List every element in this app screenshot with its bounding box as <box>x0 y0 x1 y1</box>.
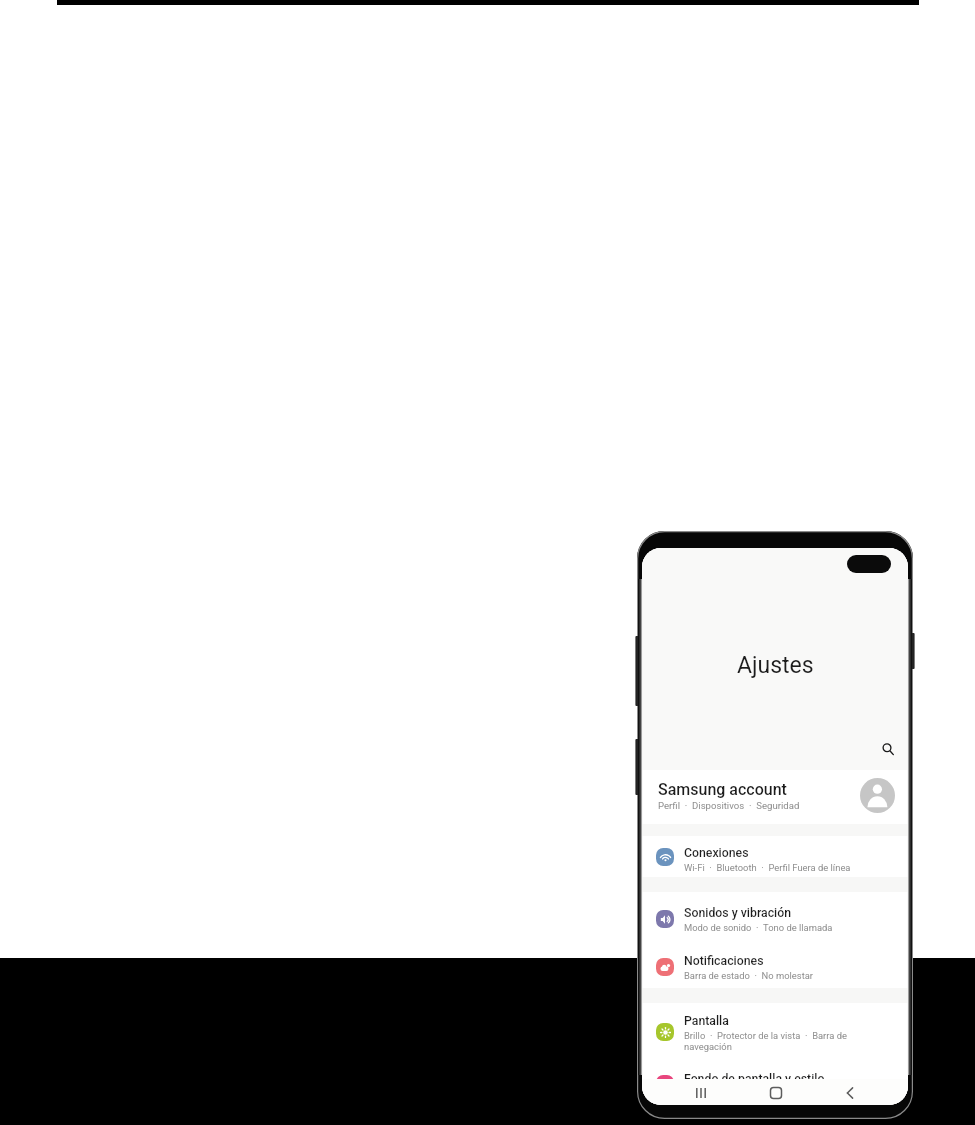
staticText: Samsung account <box>658 780 787 799</box>
staticText: Notificaciones <box>684 954 764 968</box>
button[interactable]: Sonidos y vibración <box>642 892 908 943</box>
button[interactable]: Notificaciones <box>642 943 908 988</box>
staticText: Barra de estado · No molestar <box>684 970 884 981</box>
staticText: Conexiones <box>684 846 749 860</box>
staticText: Brillo · Protector de la vista · Barra d… <box>684 1030 850 1052</box>
staticText: Pantalla <box>684 1014 729 1028</box>
button[interactable]: Inicio <box>765 1082 787 1104</box>
button[interactable]: Recientes <box>690 1082 712 1104</box>
staticText: Perfil · Dispositivos · Seguridad <box>658 800 800 811</box>
button[interactable]: Atrás <box>839 1082 861 1104</box>
button[interactable]: Pantalla <box>642 1003 908 1061</box>
staticText: Wi-Fi · Bluetooth · Perfil Fuera de líne… <box>684 862 884 873</box>
staticText: Fondo de pantalla y estilo <box>684 1072 825 1086</box>
staticText: Sonidos y vibración <box>684 906 792 920</box>
staticText: Ajustes <box>737 652 814 679</box>
button[interactable]: Buscar <box>875 736 900 761</box>
button[interactable]: Samsung account <box>642 770 908 824</box>
staticText: Modo de sonido · Tono de llamada <box>684 922 884 933</box>
button[interactable]: Fondo de pantalla y estilo <box>642 1061 908 1079</box>
button[interactable]: Conexiones <box>642 836 908 877</box>
